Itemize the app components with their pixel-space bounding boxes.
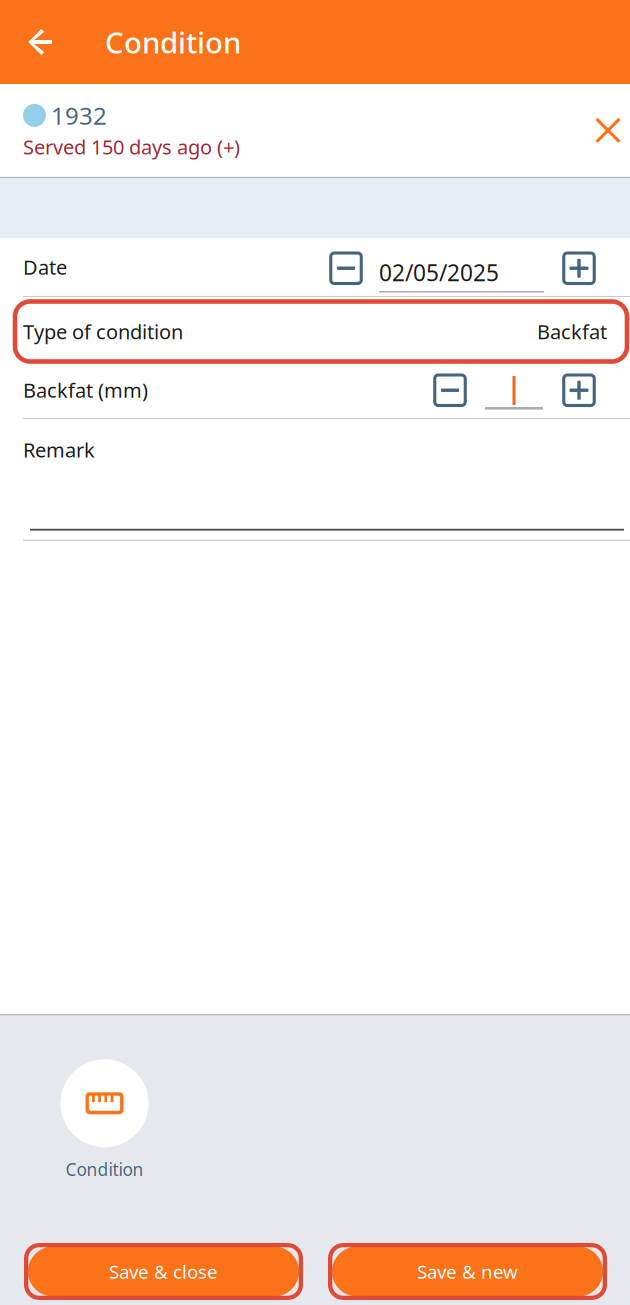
staticText: 1932 [51, 99, 107, 131]
button[interactable]: Next date [562, 238, 596, 296]
staticText: 02/05/2025 [379, 257, 499, 287]
button[interactable]: Increase backfat [562, 362, 596, 418]
staticText: Backfat [537, 318, 607, 345]
button[interactable]: Save & new [328, 1243, 607, 1300]
button[interactable]: Type of condition [0, 297, 630, 362]
staticText: Save & new [417, 1259, 518, 1284]
staticText: Served 150 days ago (+) [23, 134, 240, 160]
staticText: Save & close [109, 1259, 218, 1284]
staticText: Backfat (mm) [23, 377, 148, 403]
staticText: Condition [65, 1158, 143, 1181]
staticText: Type of condition [23, 318, 183, 345]
staticText: Date [23, 254, 67, 280]
button[interactable]: Decrease backfat [433, 362, 467, 418]
button[interactable]: Close [586, 85, 630, 175]
button[interactable]: Back [0, 0, 80, 84]
staticText: Remark [23, 436, 95, 463]
button[interactable]: Condition [30, 1059, 179, 1179]
staticText: Condition [105, 22, 241, 61]
button[interactable]: Save & close [24, 1243, 303, 1300]
button[interactable]: Previous date [329, 238, 363, 296]
